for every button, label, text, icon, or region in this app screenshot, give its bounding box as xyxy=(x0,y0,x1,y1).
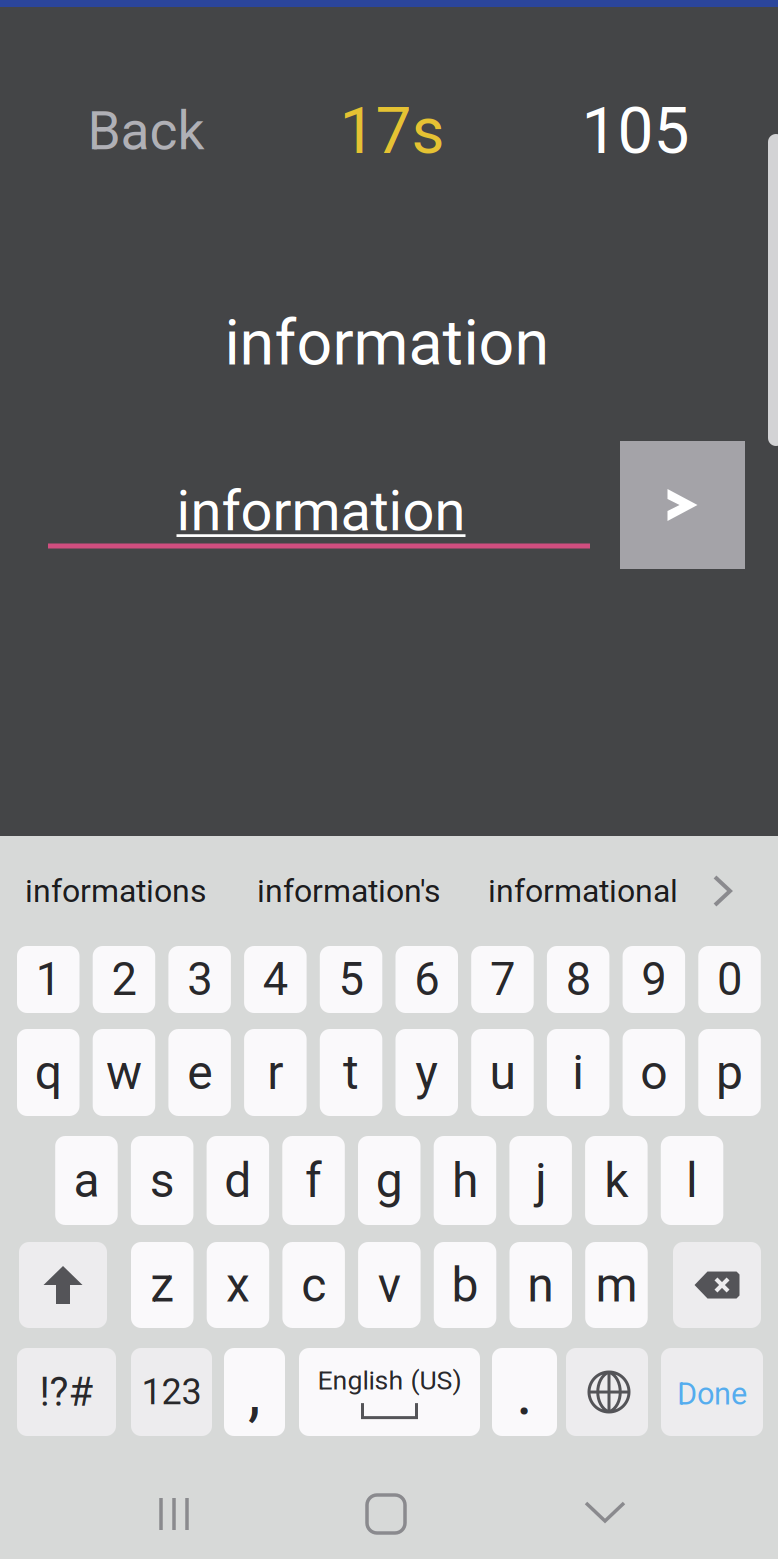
button[interactable]: v xyxy=(358,1242,421,1328)
staticText: v xyxy=(378,1257,401,1313)
staticText: information xyxy=(224,306,549,380)
button[interactable]: b xyxy=(434,1242,496,1328)
staticText: z xyxy=(150,1257,174,1313)
staticText: e xyxy=(187,1044,212,1101)
button[interactable]: Done xyxy=(661,1348,763,1436)
staticText: information xyxy=(176,478,465,544)
button[interactable]: n xyxy=(509,1242,572,1328)
button[interactable]: Back xyxy=(69,88,222,174)
staticText: p xyxy=(716,1044,743,1101)
staticText: c xyxy=(301,1257,326,1313)
button[interactable]: r xyxy=(244,1029,307,1116)
button[interactable]: 4 xyxy=(244,946,307,1013)
button[interactable]: f xyxy=(282,1136,345,1225)
staticText: 5 xyxy=(339,953,364,1006)
button[interactable]: 2 xyxy=(93,946,155,1013)
button[interactable]: 1 xyxy=(17,946,79,1013)
button[interactable]: 123 xyxy=(131,1348,212,1436)
button[interactable]: a xyxy=(55,1136,118,1225)
button[interactable]: k xyxy=(585,1136,648,1225)
staticText: information's xyxy=(257,872,441,910)
button[interactable]: Shift xyxy=(19,1242,107,1328)
staticText: English (US) xyxy=(317,1365,461,1396)
button[interactable]: j xyxy=(509,1136,572,1225)
button[interactable]: o xyxy=(623,1029,685,1116)
button[interactable]: information's xyxy=(239,852,459,930)
staticText: m xyxy=(595,1257,637,1313)
staticText: t xyxy=(343,1044,359,1101)
button[interactable]: More suggestions xyxy=(695,857,753,925)
button[interactable]: i xyxy=(547,1029,609,1116)
staticText: 2 xyxy=(111,953,136,1006)
button[interactable]: l xyxy=(661,1136,723,1225)
staticText: 0 xyxy=(717,953,742,1006)
button[interactable]: !?# xyxy=(17,1348,116,1436)
staticText: Done xyxy=(677,1376,747,1412)
button[interactable]: q xyxy=(17,1029,79,1116)
staticText: 8 xyxy=(566,953,591,1006)
button[interactable]: 8 xyxy=(547,946,609,1013)
button[interactable]: 5 xyxy=(320,946,382,1013)
button[interactable]: g xyxy=(358,1136,420,1225)
staticText: 105 xyxy=(581,93,689,168)
staticText: 9 xyxy=(641,953,666,1006)
button[interactable]: t xyxy=(320,1029,382,1116)
button[interactable]: w xyxy=(93,1029,155,1116)
staticText: u xyxy=(489,1044,515,1101)
staticText: b xyxy=(452,1257,479,1313)
button[interactable]: 9 xyxy=(623,946,685,1013)
button[interactable]: s xyxy=(131,1136,193,1225)
button[interactable]: . xyxy=(492,1348,557,1436)
staticText: 7 xyxy=(490,953,515,1006)
button[interactable]: informational xyxy=(470,852,696,930)
button[interactable]: e xyxy=(168,1029,231,1116)
button[interactable]: Change language xyxy=(566,1348,648,1436)
staticText: h xyxy=(452,1152,478,1209)
button[interactable]: Space xyxy=(299,1348,480,1436)
button[interactable]: p xyxy=(698,1029,761,1116)
staticText: q xyxy=(35,1044,62,1101)
button[interactable]: 7 xyxy=(471,946,534,1013)
staticText: 123 xyxy=(141,1371,201,1413)
button[interactable]: z xyxy=(131,1242,193,1328)
button[interactable]: 0 xyxy=(698,946,761,1013)
button[interactable]: 6 xyxy=(395,946,458,1013)
staticText: 6 xyxy=(414,953,439,1006)
staticText: j xyxy=(535,1152,546,1209)
staticText: r xyxy=(267,1044,283,1101)
button[interactable]: Recent apps xyxy=(135,1474,213,1554)
staticText: 3 xyxy=(187,953,212,1006)
staticText: a xyxy=(73,1152,99,1209)
staticText: y xyxy=(415,1044,438,1101)
staticText: 1 xyxy=(36,953,61,1006)
button[interactable]: h xyxy=(434,1136,496,1225)
staticText: informations xyxy=(25,872,207,910)
button[interactable]: m xyxy=(585,1242,648,1328)
staticText: s xyxy=(150,1152,175,1209)
staticText: l xyxy=(686,1152,698,1209)
staticText: w xyxy=(106,1044,142,1101)
staticText: o xyxy=(640,1044,667,1101)
staticText: d xyxy=(224,1152,251,1209)
button[interactable]: Backspace xyxy=(673,1242,761,1328)
button[interactable]: , xyxy=(224,1348,285,1436)
staticText: , xyxy=(248,1354,261,1429)
button[interactable]: informations xyxy=(7,852,225,930)
staticText: 4 xyxy=(263,953,288,1006)
staticText: !?# xyxy=(39,1369,93,1415)
button[interactable]: c xyxy=(282,1242,345,1328)
staticText: i xyxy=(572,1044,584,1101)
button[interactable]: Hide keyboard xyxy=(562,1479,648,1549)
staticText: 17s xyxy=(339,93,444,168)
button[interactable]: d xyxy=(207,1136,269,1225)
staticText: k xyxy=(604,1152,628,1209)
staticText: Back xyxy=(87,100,204,162)
button[interactable]: 3 xyxy=(168,946,231,1013)
button[interactable]: x xyxy=(207,1242,269,1328)
staticText: x xyxy=(226,1257,250,1313)
button[interactable]: y xyxy=(395,1029,458,1116)
button[interactable]: Home xyxy=(345,1473,427,1555)
button[interactable]: Submit xyxy=(620,441,745,569)
button[interactable]: u xyxy=(471,1029,534,1116)
staticText: f xyxy=(305,1152,322,1209)
